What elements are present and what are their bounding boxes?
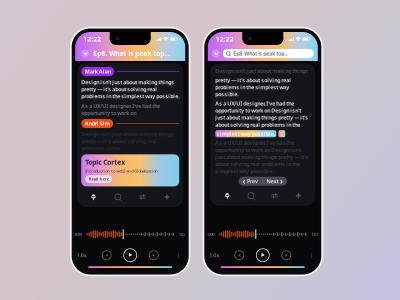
button[interactable]: Magic — [287, 188, 310, 204]
button[interactable]: Equalizer — [130, 189, 155, 205]
button[interactable]: Back 15 seconds — [102, 251, 111, 260]
staticText: Design isn't just about making things — [215, 67, 308, 75]
button[interactable]: Record — [81, 189, 106, 205]
button[interactable]: 1.0x — [206, 247, 222, 263]
button[interactable]: 1.0x — [74, 247, 90, 263]
staticText: Design isn't just about making things pr… — [81, 79, 179, 100]
staticText: 12:22 — [216, 35, 234, 43]
staticText: 12:22 — [83, 35, 101, 43]
button[interactable]: Record — [215, 188, 239, 204]
button[interactable]: Play — [256, 249, 269, 262]
staticText: As a UX/UI designer, I've had the opport… — [215, 100, 308, 128]
staticText: Mark Alan — [85, 68, 111, 75]
staticText: 1.0x — [77, 252, 87, 259]
button[interactable]: Magic — [155, 189, 179, 205]
button[interactable]: Equalizer — [263, 188, 287, 204]
button[interactable]: Ep8. What is peak top… — [208, 46, 318, 61]
button[interactable]: Back 15 seconds — [235, 251, 244, 260]
staticText: Next — [267, 178, 279, 185]
button[interactable]: Next — [263, 177, 287, 186]
staticText: Andri Sim — [85, 120, 110, 127]
staticText: Design isn't just about making things pr… — [81, 131, 174, 152]
staticText: Ep8. What is peak top… — [233, 50, 288, 57]
staticText: Topic Cortex — [85, 158, 125, 167]
staticText: As a UX/UI designer, I've had the opport… — [81, 102, 160, 116]
button[interactable]: ‹ — [239, 177, 262, 186]
staticText: 00:00 — [73, 231, 82, 237]
button[interactable]: Ep8. What is peak top… — [75, 46, 185, 61]
button[interactable]: More options — [303, 247, 319, 263]
staticText: Ep8. What is peak top… — [93, 49, 170, 58]
staticText: pretty — it's about solving real problem… — [215, 77, 291, 98]
button[interactable]: More options — [171, 247, 187, 263]
staticText: › — [280, 176, 283, 186]
button[interactable]: Search — [106, 189, 130, 205]
staticText: 12:30 — [311, 231, 320, 237]
staticText: 00:00 — [205, 231, 214, 237]
staticText: Introduction to web3 and Globalization — [85, 168, 158, 174]
button[interactable]: Play — [124, 249, 137, 262]
staticText: 12:30 — [179, 231, 188, 237]
staticText: Read here — [89, 176, 109, 182]
staticText: ‹ — [243, 176, 246, 186]
button[interactable]: Search — [239, 188, 263, 204]
staticText: As a UX/UI designer, I've had the opport… — [215, 139, 308, 175]
button[interactable]: Forward 15 seconds — [282, 251, 291, 260]
staticText: Prev — [247, 178, 258, 185]
staticText: simplest way possible. — [217, 130, 275, 137]
staticText: 1.0x — [209, 252, 219, 259]
button[interactable]: Forward 15 seconds — [149, 251, 158, 260]
button[interactable]: Read here — [85, 175, 112, 183]
